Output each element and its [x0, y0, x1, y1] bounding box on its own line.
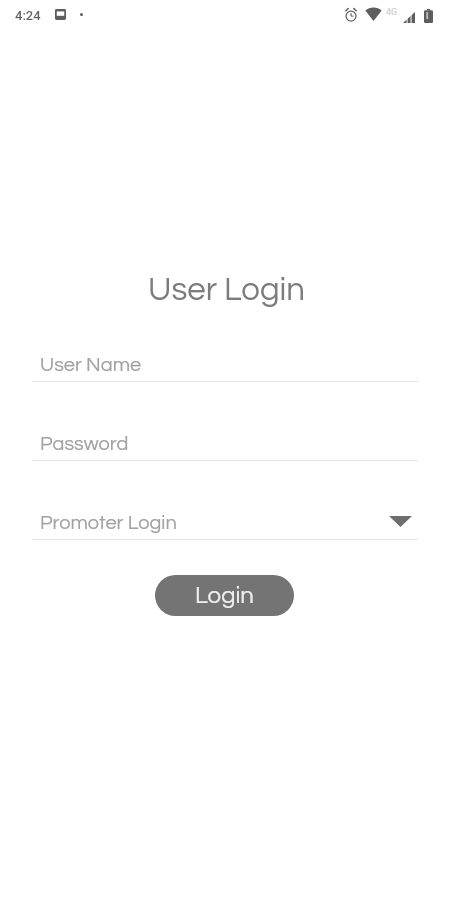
other: Select login type: [389, 516, 412, 527]
staticText: 4G: [386, 7, 398, 18]
other: Battery: [424, 9, 433, 23]
other: Cellular signal: [403, 12, 415, 23]
staticText: Password: [40, 434, 129, 455]
staticText: Promoter Login: [40, 513, 177, 534]
button[interactable]: User Name: [32, 345, 418, 382]
staticText: User Login: [148, 273, 306, 307]
other: Screenshot: [55, 9, 66, 20]
button[interactable]: Password: [32, 424, 418, 461]
other: Alarm set: [344, 8, 358, 22]
staticText: 4:24: [15, 8, 41, 23]
staticText: User Name: [40, 355, 142, 376]
staticText: Login: [195, 583, 254, 608]
other: Wi-Fi: [365, 8, 382, 21]
button[interactable]: Promoter Login: [32, 503, 418, 540]
button[interactable]: Login: [155, 575, 294, 616]
